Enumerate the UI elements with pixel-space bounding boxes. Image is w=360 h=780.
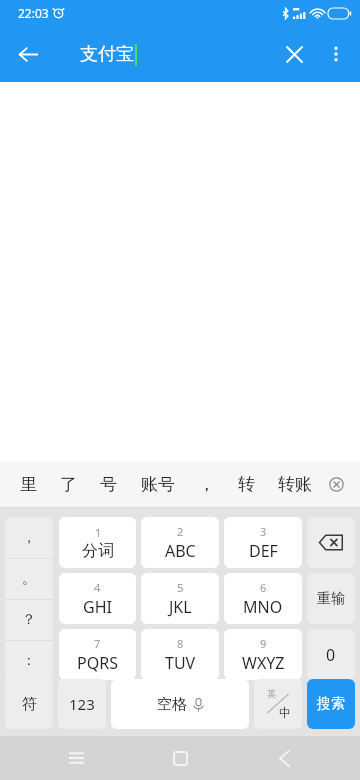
- staticText: 123: [69, 694, 95, 714]
- button[interactable]: 3: [224, 517, 302, 568]
- staticText: MNO: [243, 596, 283, 618]
- staticText: 分词: [82, 541, 114, 561]
- staticText: 里: [20, 474, 37, 495]
- staticText: 1: [95, 525, 102, 540]
- staticText: 号: [100, 474, 117, 495]
- button[interactable]: Close candidates: [320, 468, 352, 500]
- button[interactable]: 里: [16, 468, 41, 501]
- button[interactable]: ：: [5, 641, 53, 681]
- staticText: 搜索: [317, 695, 345, 713]
- button[interactable]: ？: [5, 600, 53, 640]
- button[interactable]: 6: [224, 573, 302, 624]
- staticText: 7: [94, 636, 101, 651]
- button[interactable]: 转: [234, 468, 259, 501]
- button[interactable]: 重输: [307, 573, 355, 624]
- button[interactable]: 搜索: [307, 679, 355, 729]
- staticText: 0: [326, 644, 336, 666]
- staticText: PQRS: [77, 652, 118, 674]
- staticText: ABC: [165, 540, 196, 562]
- button[interactable]: 空格: [111, 679, 249, 729]
- button[interactable]: 2: [141, 517, 219, 568]
- button[interactable]: ，: [5, 517, 53, 558]
- staticText: 22:03: [18, 5, 49, 21]
- staticText: 重输: [317, 590, 345, 608]
- button[interactable]: 符: [5, 679, 53, 729]
- button[interactable]: Home: [158, 736, 202, 780]
- button[interactable]: 了: [56, 468, 81, 501]
- button[interactable]: 。: [5, 559, 53, 599]
- staticText: 账号: [141, 474, 175, 495]
- staticText: 6: [260, 580, 267, 595]
- button[interactable]: 9: [224, 629, 302, 680]
- button[interactable]: 账号: [137, 468, 179, 501]
- staticText: 中: [279, 705, 291, 720]
- staticText: 符: [22, 695, 37, 714]
- staticText: 5: [177, 580, 184, 595]
- button[interactable]: 号: [96, 468, 121, 501]
- button[interactable]: 8: [141, 629, 219, 680]
- staticText: 9: [260, 636, 267, 651]
- staticText: 3: [260, 524, 267, 539]
- button[interactable]: Back: [6, 32, 50, 76]
- staticText: ？: [22, 611, 36, 629]
- button[interactable]: Backspace: [307, 517, 355, 568]
- staticText: 转账: [278, 474, 312, 495]
- button[interactable]: Clear: [272, 32, 316, 76]
- button[interactable]: More options: [314, 32, 358, 76]
- staticText: 空格: [157, 695, 187, 714]
- staticText: ，: [22, 529, 36, 547]
- staticText: 4: [94, 580, 101, 595]
- button[interactable]: 5: [141, 573, 219, 624]
- button[interactable]: 0: [307, 629, 355, 680]
- staticText: ，: [198, 474, 215, 495]
- staticText: 支付宝: [80, 43, 134, 66]
- button[interactable]: ，: [194, 468, 219, 501]
- staticText: GHI: [83, 596, 112, 618]
- button[interactable]: 1: [59, 517, 136, 568]
- staticText: 了: [60, 474, 77, 495]
- staticText: 。: [22, 570, 36, 588]
- button[interactable]: 英: [254, 679, 302, 729]
- staticText: 转: [238, 474, 255, 495]
- staticText: 英: [267, 688, 276, 699]
- other: Backspace: [319, 534, 343, 551]
- staticText: JKL: [169, 596, 192, 618]
- button[interactable]: Recents: [54, 736, 98, 780]
- staticText: DEF: [249, 540, 278, 562]
- staticText: 2: [177, 524, 184, 539]
- staticText: ：: [22, 652, 36, 670]
- button[interactable]: 123: [58, 679, 106, 729]
- button[interactable]: 转账: [274, 468, 316, 501]
- button[interactable]: Back: [262, 736, 306, 780]
- staticText: WXYZ: [242, 652, 285, 674]
- button[interactable]: 7: [59, 629, 136, 680]
- staticText: TUV: [165, 652, 196, 674]
- staticText: 8: [177, 636, 184, 651]
- button[interactable]: 4: [59, 573, 136, 624]
